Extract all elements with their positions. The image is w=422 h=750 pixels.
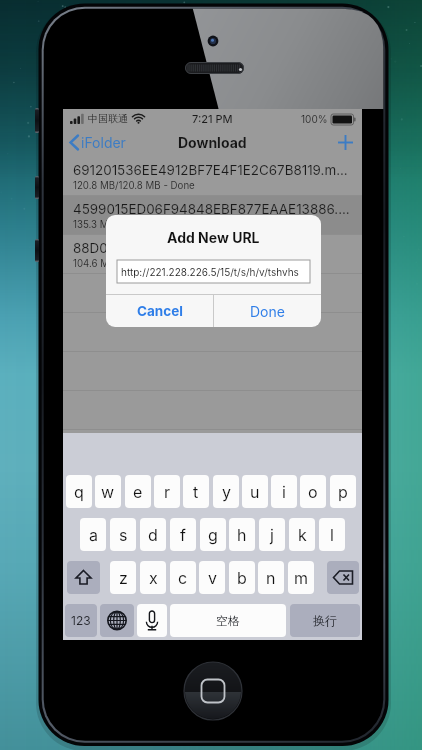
button[interactable]: a [80, 518, 106, 551]
staticText: c [178, 568, 188, 587]
staticText: i [282, 482, 286, 501]
staticText: h [237, 525, 247, 544]
staticText: Add New URL [167, 229, 260, 246]
button[interactable]: m [288, 561, 314, 594]
button[interactable]: Switch keyboard [100, 604, 134, 637]
button[interactable]: Add [328, 128, 362, 157]
button[interactable]: f [170, 518, 196, 551]
button[interactable]: Dictation [137, 604, 167, 637]
staticText: 88D0E9C6F9E62A4F4A4B8E39E7C... [73, 240, 314, 256]
staticText: iFolder [81, 134, 126, 151]
staticText: j [270, 525, 274, 544]
button[interactable]: d [140, 518, 166, 551]
staticText: o [308, 482, 318, 501]
button[interactable]: 换行 [290, 604, 360, 637]
button[interactable]: s [110, 518, 136, 551]
staticText: 7:21 PM [192, 112, 233, 125]
staticText: x [149, 568, 158, 587]
staticText: 空格 [216, 613, 240, 628]
staticText: g [208, 525, 218, 544]
staticText: z [119, 568, 128, 587]
button[interactable]: iFolder [69, 134, 126, 151]
button[interactable]: x [140, 561, 166, 594]
button[interactable]: b [229, 561, 255, 594]
button[interactable]: v [199, 561, 225, 594]
staticText: l [330, 525, 334, 544]
staticText: 123 [71, 613, 91, 628]
button[interactable]: p [330, 475, 356, 508]
staticText: r [164, 482, 171, 501]
button[interactable]: Backspace [327, 561, 359, 594]
button[interactable]: r [154, 475, 180, 508]
button[interactable]: e [125, 475, 151, 508]
staticText: f [180, 525, 186, 544]
button[interactable]: 123 [65, 604, 97, 637]
button[interactable]: q [66, 475, 92, 508]
staticText: 135.3 MB/135.3 MB - Done [73, 219, 195, 231]
staticText: s [119, 525, 128, 544]
button[interactable]: w [95, 475, 121, 508]
staticText: n [266, 568, 276, 587]
staticText: d [148, 525, 158, 544]
staticText: 换行 [313, 613, 337, 628]
button[interactable]: 空格 [170, 604, 286, 637]
button[interactable]: 88D0E9C6F9E62A4F4A4B8E39E7C... [63, 235, 362, 274]
button[interactable]: http://221.228.226.5/15/t/s/h/v/tshvhs [117, 260, 310, 283]
button[interactable]: l [319, 518, 345, 551]
button[interactable]: k [289, 518, 315, 551]
button[interactable]: Cancel [106, 295, 213, 327]
staticText: Cancel [137, 303, 183, 319]
staticText: v [208, 568, 217, 587]
staticText: 100% [301, 113, 328, 125]
staticText: 120.8 MB/120.8 MB - Done [73, 180, 195, 192]
button[interactable]: u [242, 475, 268, 508]
staticText: m [294, 568, 309, 587]
button[interactable]: n [258, 561, 284, 594]
button[interactable]: t [183, 475, 209, 508]
staticText: Done [250, 303, 285, 320]
staticText: 中国联通 [88, 112, 128, 125]
staticText: 4599015ED06F94848EBF877EAAE13886.... [73, 201, 350, 217]
button[interactable]: Shift [67, 561, 100, 594]
staticText: y [222, 482, 231, 501]
staticText: a [89, 525, 98, 544]
staticText: k [298, 525, 307, 544]
button[interactable]: g [200, 518, 226, 551]
button[interactable]: Done [214, 295, 321, 327]
staticText: w [101, 482, 115, 501]
button[interactable]: z [110, 561, 136, 594]
button[interactable]: y [213, 475, 239, 508]
button[interactable]: h [229, 518, 255, 551]
staticText: b [237, 568, 247, 587]
staticText: e [133, 482, 143, 501]
staticText: q [74, 482, 84, 501]
button[interactable]: o [300, 475, 326, 508]
staticText: p [338, 482, 348, 501]
staticText: 691201536EE4912BF7E4F1E2C67B8119.m... [73, 162, 348, 178]
button[interactable]: 691201536EE4912BF7E4F1E2C67B8119.m... [63, 157, 362, 196]
staticText: u [250, 482, 260, 501]
button[interactable]: j [259, 518, 285, 551]
button[interactable]: 4599015ED06F94848EBF877EAAE13886.... [63, 196, 362, 235]
staticText: http://221.228.226.5/15/t/s/h/v/tshvhs [121, 266, 299, 278]
staticText: t [193, 482, 199, 501]
staticText: Download [178, 134, 247, 151]
staticText: 104.6 MB/104.6 MB - Done [73, 258, 196, 270]
button[interactable]: i [271, 475, 297, 508]
button[interactable]: c [170, 561, 196, 594]
